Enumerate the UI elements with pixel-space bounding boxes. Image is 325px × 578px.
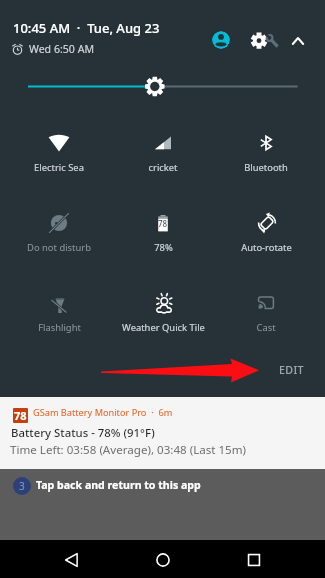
button[interactable]: Electric Sea (9, 128, 109, 180)
button[interactable]: Brightness (0, 74, 325, 99)
staticText: Auto-rotate (241, 241, 292, 254)
staticText: Flashlight (38, 321, 81, 334)
staticText: 10:45 AM · Tue, Aug 23 (13, 19, 160, 37)
button[interactable]: Do not disturb (9, 208, 109, 260)
staticText: Electric Sea (34, 161, 84, 174)
button[interactable]: EDIT (271, 356, 312, 384)
staticText: Tap back and return to this app (36, 478, 201, 492)
button[interactable]: Recents (238, 541, 270, 578)
staticText: Bluetooth (244, 161, 288, 174)
staticText: Wed 6:50 AM (29, 42, 95, 56)
button[interactable]: User profile (212, 31, 230, 49)
staticText: 78% (154, 241, 173, 254)
button[interactable]: Flashlight (9, 288, 109, 340)
button[interactable]: 3 (0, 469, 325, 540)
button[interactable]: Collapse (288, 31, 308, 51)
button[interactable]: Home (147, 541, 179, 578)
button[interactable]: cricket (113, 128, 213, 180)
button[interactable]: 78 (0, 397, 325, 469)
button[interactable]: Weather Quick Tile (113, 288, 213, 340)
button[interactable]: Settings (248, 28, 282, 54)
staticText: EDIT (279, 363, 304, 377)
staticText: 78 (14, 408, 27, 423)
staticText: Battery Status - 78% (91°F) (11, 425, 155, 441)
button[interactable]: Auto-rotate (216, 208, 316, 260)
button[interactable]: Back (56, 541, 88, 578)
staticText: Cast (256, 321, 276, 334)
staticText: 3 (19, 479, 25, 493)
staticText: Time Left: 03:58 (Average), 03:48 (Last … (10, 442, 247, 458)
button[interactable]: 78 (113, 208, 213, 260)
staticText: Weather Quick Tile (122, 321, 205, 334)
button[interactable]: Bluetooth (216, 128, 316, 180)
staticText: GSam Battery Monitor Pro · 6m (33, 406, 173, 419)
staticText: Do not disturb (27, 241, 91, 254)
staticText: 78 (158, 218, 168, 229)
button[interactable]: Cast (216, 288, 316, 340)
staticText: cricket (148, 161, 178, 174)
